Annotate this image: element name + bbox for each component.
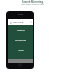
button[interactable]: Sync (16, 48, 26, 51)
button[interactable]: Mirroring (13, 38, 28, 41)
staticText: Keep search results in sync (21, 3, 44, 5)
staticText: Sync (18, 48, 24, 51)
button[interactable]: Back (8, 19, 33, 25)
staticText: Mirroring (13, 21, 23, 24)
staticText: Search Mirroring (22, 0, 43, 3)
button[interactable]: Device (15, 28, 27, 31)
staticText: Mirroring (15, 38, 26, 41)
button[interactable]: Back (9, 21, 12, 24)
staticText: Device (17, 28, 25, 31)
